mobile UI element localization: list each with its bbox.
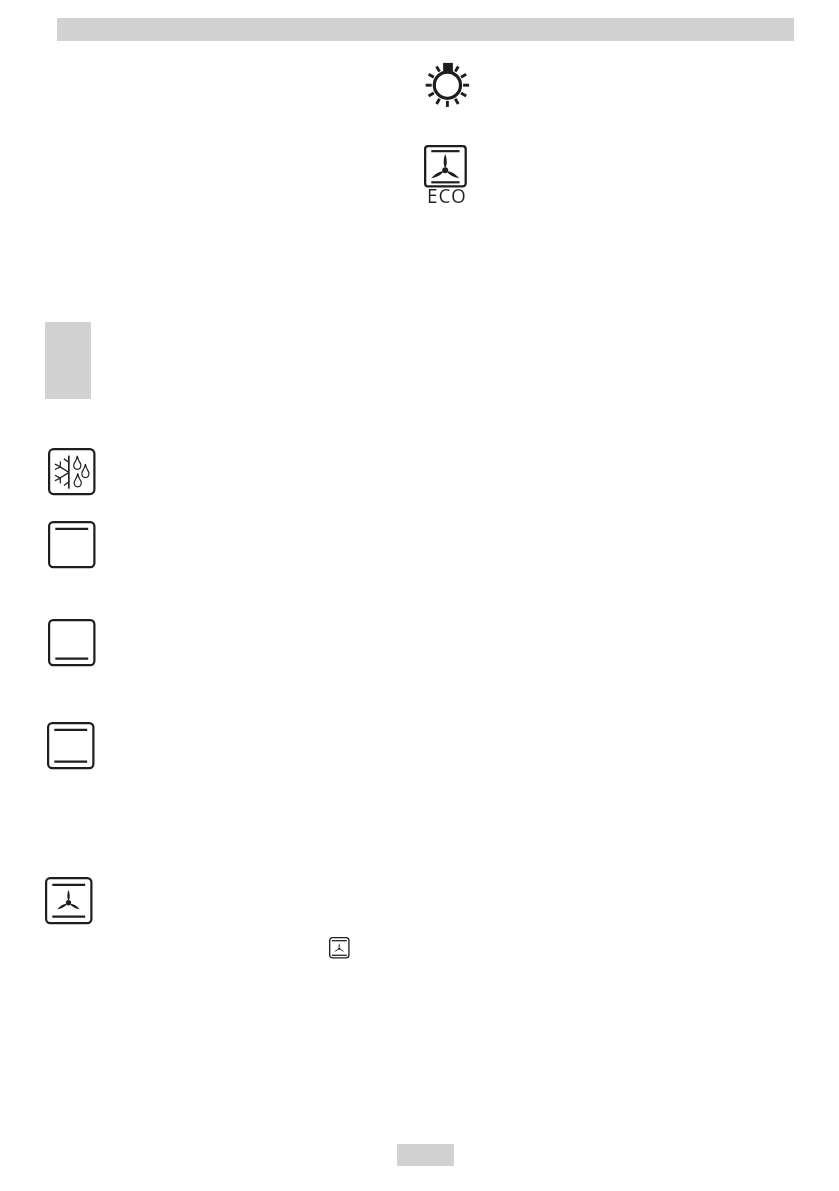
button[interactable]: Defrost programme [48,448,96,495]
button[interactable]: Fan assisted heat symbol [329,937,350,959]
button[interactable]: Bottom heat programme [48,619,96,666]
button[interactable]: Fan assisted top and bottom heat program… [45,877,93,924]
button[interactable]: Top heat programme [48,521,96,568]
button[interactable]: ECO fan oven programme [424,145,467,187]
button[interactable]: Top and bottom heat programme [47,722,95,769]
button[interactable]: Oven light [414,52,481,119]
staticText: ECO [427,183,467,209]
